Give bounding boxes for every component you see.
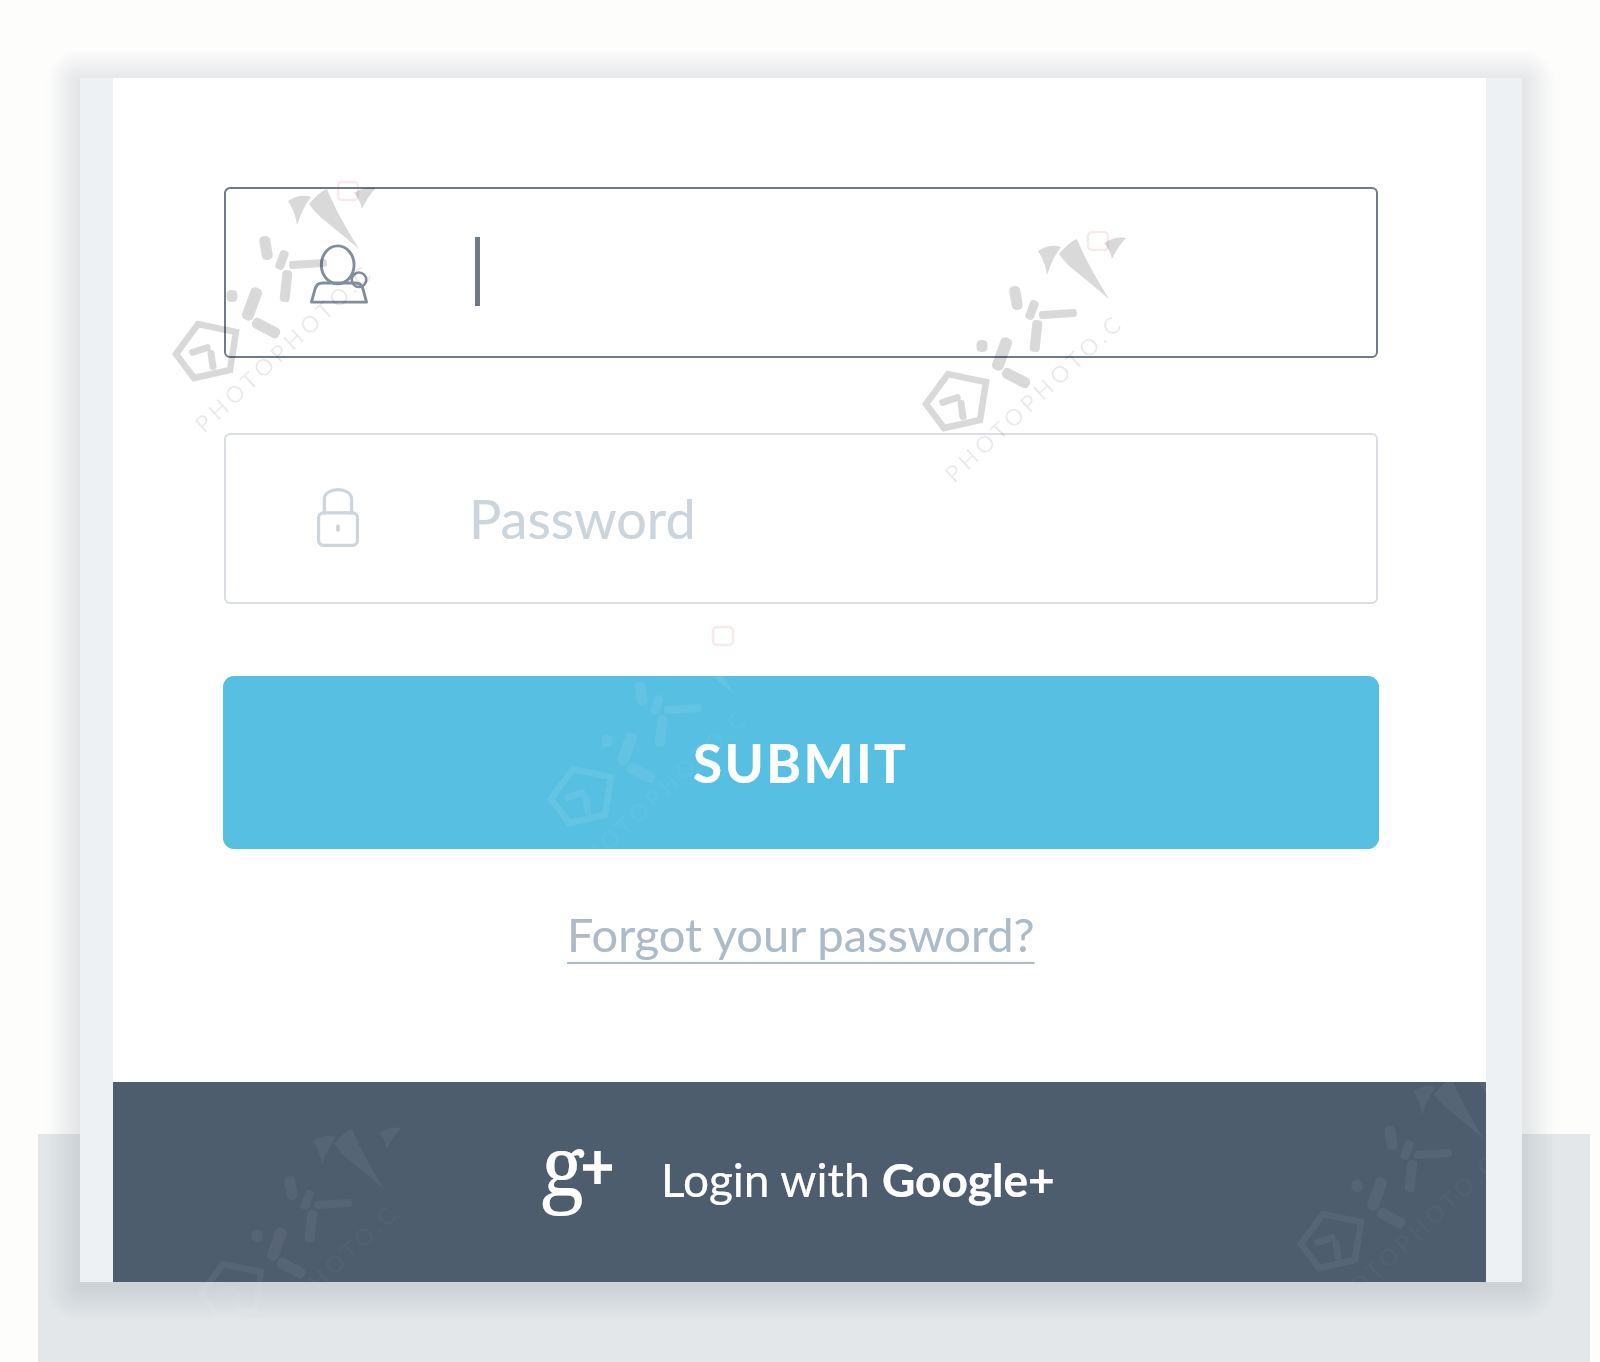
staticText: SUBMIT xyxy=(693,731,909,795)
button[interactable]: Password xyxy=(224,433,1378,604)
staticText: Google+ xyxy=(882,1152,1055,1207)
staticText: PHOTOPHOTO.CN xyxy=(564,698,758,883)
staticText: g xyxy=(541,1108,586,1220)
button[interactable]: Forgot your password? xyxy=(567,906,1035,962)
staticText: PHOTOPHOTO.CN xyxy=(939,303,1133,488)
staticText: Login with xyxy=(661,1152,882,1207)
staticText: PHOTOPHOTO.CN xyxy=(214,1193,408,1362)
staticText: PHOTOPHOTO.CN xyxy=(1314,1143,1508,1328)
button[interactable]: Username xyxy=(224,187,1378,358)
button[interactable]: SUBMIT xyxy=(223,676,1379,849)
staticText: Password xyxy=(469,486,696,551)
button[interactable]: g xyxy=(113,1082,1486,1282)
staticText: PHOTOPHOTO.CN xyxy=(189,253,383,438)
